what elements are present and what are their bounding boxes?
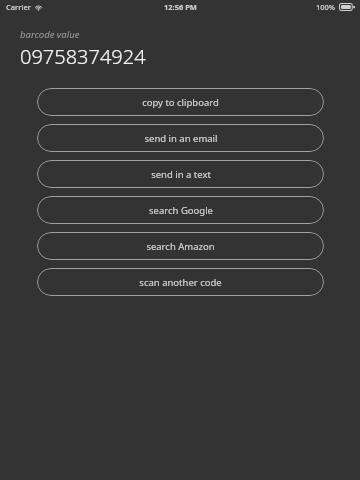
button[interactable]: search Amazon: [37, 232, 324, 260]
staticText: 100%: [316, 2, 336, 12]
button[interactable]: send in a text: [37, 160, 324, 188]
staticText: 12:56 PM: [164, 2, 197, 12]
button[interactable]: search Google: [37, 196, 324, 224]
staticText: send in a text: [151, 168, 211, 181]
staticText: barcode value: [20, 28, 80, 41]
staticText: copy to clipboard: [142, 96, 219, 109]
staticText: send in an email: [144, 132, 218, 145]
staticText: Carrier: [6, 2, 31, 12]
staticText: search Google: [149, 204, 213, 217]
button[interactable]: scan another code: [37, 268, 324, 296]
staticText: 09758374924: [20, 43, 146, 70]
staticText: scan another code: [139, 276, 222, 289]
button[interactable]: send in an email: [37, 124, 324, 152]
button[interactable]: copy to clipboard: [37, 88, 324, 116]
staticText: search Amazon: [146, 240, 215, 253]
